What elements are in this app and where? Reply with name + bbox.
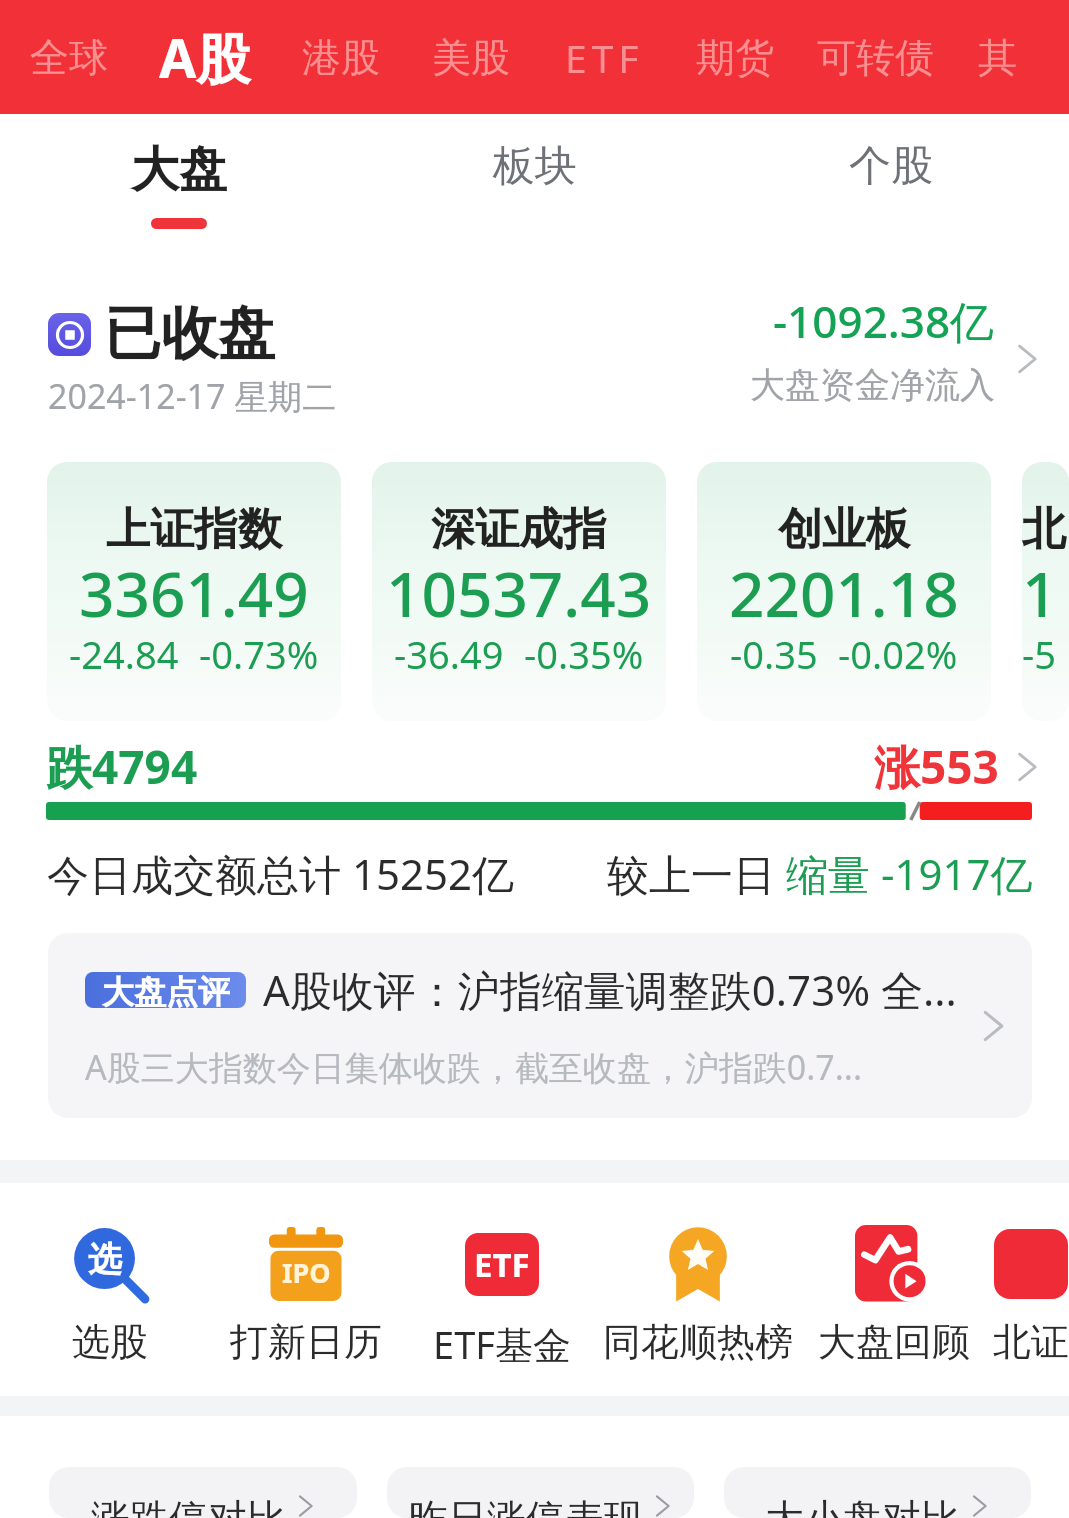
button[interactable]: 创业板: [697, 462, 991, 721]
other: 选股: [71, 1225, 149, 1303]
staticText: A股收评：沪指缩量调整跌0.73% 全...: [263, 961, 957, 1018]
button[interactable]: 期货: [672, 15, 798, 100]
staticText: 缩量: [786, 845, 881, 902]
button[interactable]: 个股: [713, 114, 1069, 211]
staticText: 同花顺热榜: [603, 1318, 793, 1366]
button[interactable]: 涨跌停对比: [49, 1467, 357, 1518]
staticText: ETF基金: [433, 1318, 571, 1370]
button[interactable]: 板块: [357, 114, 713, 211]
button[interactable]: 打新日历: [208, 1225, 404, 1366]
button[interactable]: 美股: [405, 15, 537, 100]
staticText: 其他: [978, 33, 1044, 82]
staticText: 较上一日: [607, 845, 786, 902]
staticText: 美股: [432, 33, 510, 82]
button[interactable]: 大盘: [0, 114, 357, 229]
staticText: A股: [159, 20, 251, 94]
staticText: 10537.43: [386, 551, 652, 635]
button[interactable]: 其他: [953, 15, 1069, 100]
staticText: -36.49: [394, 628, 504, 680]
button[interactable]: 港股: [277, 15, 405, 100]
button[interactable]: A股: [133, 2, 277, 112]
staticText: ETF: [565, 31, 644, 84]
button[interactable]: 选股: [12, 1225, 208, 1366]
staticText: 打新日历: [230, 1318, 382, 1366]
staticText: 选股: [72, 1318, 148, 1366]
button[interactable]: 深证成指: [372, 462, 666, 721]
other: ETF基金: [465, 1233, 539, 1296]
staticText: 全球: [30, 33, 108, 82]
staticText: 10772.88: [1022, 551, 1069, 635]
button[interactable]: ETF基金: [404, 1225, 600, 1370]
staticText: 大盘资金净流入: [750, 363, 995, 407]
staticText: A股三大指数今日集体收跌，截至收盘，沪指跌0.7...: [85, 1044, 863, 1090]
button[interactable]: 大盘回顾: [796, 1225, 992, 1366]
staticText: 上证指数: [106, 502, 282, 557]
staticText: 昨日涨停表现: [409, 1494, 643, 1518]
staticText: 大盘点评: [102, 972, 230, 1008]
staticText: 大盘回顾: [818, 1318, 970, 1366]
button[interactable]: 大小盘对比: [724, 1467, 1031, 1518]
button[interactable]: 上证指数: [47, 462, 341, 721]
staticText: -0.35%: [524, 628, 644, 680]
button[interactable]: 大盘点评: [48, 933, 1032, 1118]
staticText: 期货: [696, 33, 774, 82]
staticText: IPO: [282, 1254, 331, 1291]
staticText: 跌4794: [46, 735, 198, 798]
staticText: 涨553: [874, 735, 999, 798]
other: 打新日历: [269, 1227, 343, 1301]
staticText: ETF: [474, 1242, 530, 1287]
staticText: 可转债: [817, 33, 934, 82]
staticText: -24.84: [69, 628, 179, 680]
staticText: 创业板: [778, 502, 910, 557]
other: 同花顺热榜: [659, 1225, 737, 1303]
staticText: 北证: [993, 1318, 1069, 1366]
button[interactable]: 可转债: [798, 15, 953, 100]
staticText: -58.20: [1022, 628, 1069, 680]
button[interactable]: 北证: [992, 1225, 1069, 1366]
staticText: 今日成交额总计 15252亿: [47, 845, 515, 902]
staticText: 选: [88, 1238, 122, 1281]
staticText: 北证50指数: [1022, 502, 1069, 557]
button[interactable]: 昨日涨停表现: [387, 1467, 694, 1518]
staticText: 2024-12-17 星期二: [48, 373, 337, 419]
button[interactable]: 北证50指数: [1022, 462, 1069, 721]
staticText: 板块: [493, 140, 577, 193]
other: 大盘回顾: [855, 1225, 933, 1303]
staticText: 深证成指: [431, 502, 607, 557]
other: 北证: [994, 1229, 1068, 1299]
staticText: -1917亿: [881, 845, 1033, 902]
staticText: -0.02%: [838, 628, 958, 680]
staticText: -0.35: [730, 628, 818, 680]
button[interactable]: ETF: [537, 13, 672, 102]
staticText: 港股: [302, 33, 380, 82]
staticText: -0.73%: [199, 628, 319, 680]
staticText: 个股: [849, 140, 933, 193]
button[interactable]: 全球: [5, 15, 133, 100]
staticText: 大小盘对比: [765, 1494, 960, 1518]
staticText: -1092.38亿: [773, 291, 995, 351]
staticText: 大盘: [131, 140, 227, 200]
staticText: 3361.49: [79, 551, 309, 635]
staticText: 已收盘: [104, 298, 275, 370]
staticText: 涨跌停对比: [91, 1494, 286, 1518]
button[interactable]: 同花顺热榜: [600, 1225, 796, 1366]
staticText: 2201.18: [729, 551, 959, 635]
